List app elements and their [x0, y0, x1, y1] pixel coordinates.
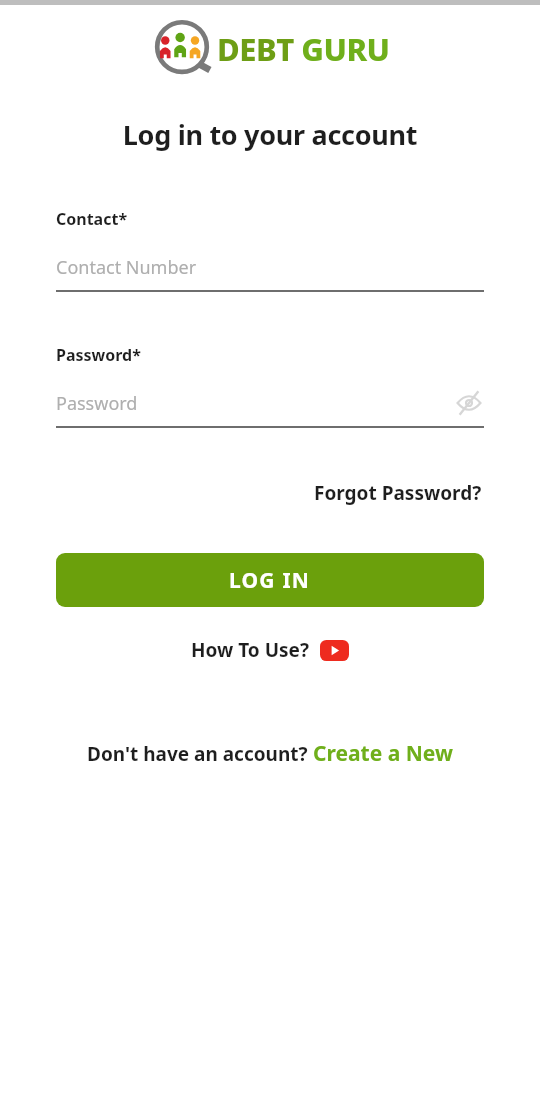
- button[interactable]: Password: [56, 391, 454, 416]
- staticText: Don't have an account?: [87, 741, 313, 767]
- staticText: Password*: [56, 344, 141, 366]
- button[interactable]: How To Use?: [187, 634, 353, 666]
- staticText: DEBT GURU: [217, 28, 390, 70]
- staticText: Password: [56, 391, 138, 416]
- staticText: Create a New: [313, 739, 453, 768]
- staticText: Contact*: [56, 208, 128, 230]
- staticText: Forgot Password?: [314, 480, 482, 506]
- button[interactable]: Forgot Password?: [312, 478, 484, 508]
- button[interactable]: Show password: [454, 388, 484, 418]
- staticText: Log in to your account: [0, 116, 540, 153]
- staticText: How To Use?: [191, 637, 309, 663]
- button[interactable]: Contact Number: [56, 252, 484, 282]
- staticText: LOG IN: [229, 566, 311, 595]
- staticText: Contact Number: [56, 255, 197, 280]
- button[interactable]: Create a New: [313, 739, 453, 768]
- button[interactable]: LOG IN: [56, 553, 484, 607]
